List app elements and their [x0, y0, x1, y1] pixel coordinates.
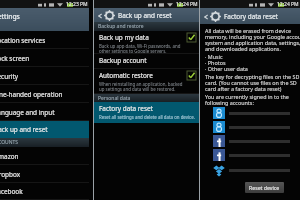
button[interactable] [213, 120, 300, 134]
staticText: All data will be erased from device memo… [205, 27, 300, 52]
staticText: Amazon [0, 152, 19, 161]
button[interactable] [213, 148, 300, 162]
button[interactable]: Amazon [0, 147, 89, 165]
button[interactable]: Language and input [0, 103, 89, 121]
button[interactable]: Dropbox [0, 165, 89, 183]
staticText: One-handed operation [0, 90, 63, 99]
staticText: Security [0, 72, 18, 81]
staticText: Reset device [249, 184, 280, 191]
staticText: Language and input [0, 108, 55, 117]
button[interactable]: Back up and reset [0, 121, 89, 138]
staticText: 12:24 PM [277, 1, 299, 8]
staticText: Backup and restore [98, 23, 144, 30]
other: Settings [104, 10, 115, 21]
button[interactable]: Location services [0, 31, 89, 49]
staticText: Back up and reset [118, 11, 172, 20]
button[interactable]: Backup account [94, 54, 199, 69]
button[interactable]: Factory data reset [94, 102, 199, 123]
staticText: Settings [0, 12, 20, 21]
button[interactable]: Reset device [245, 182, 284, 193]
staticText: 12:24 PM [176, 1, 198, 8]
staticText: When reinstalling an application, backed… [99, 81, 185, 92]
staticText: Back up and reset [0, 125, 48, 134]
staticText: You are currently signed in to the follo… [205, 93, 300, 106]
staticText: Personal data [98, 95, 131, 102]
staticText: Back up app data, Wi-Fi passwords, and o… [99, 43, 185, 54]
staticText: Location services [0, 36, 46, 45]
staticText: Reset all settings and delete all data o… [99, 114, 195, 120]
staticText: ACCOUNTS [0, 139, 19, 146]
staticText: Lock screen [0, 54, 30, 63]
button[interactable]: Back [203, 12, 209, 22]
other: Settings [210, 11, 221, 22]
staticText: Facebook [0, 187, 23, 196]
button[interactable]: Automatic restore [94, 69, 199, 94]
staticText: The key for decrypting files on the SD c… [205, 73, 300, 92]
button[interactable]: One-handed operation [0, 85, 89, 103]
staticText: Factory data reset [224, 12, 278, 21]
staticText: · Music · Photos · Other user data [205, 53, 300, 72]
button[interactable]: Back up my data [94, 31, 199, 54]
staticText: Factory data reset [99, 104, 153, 113]
staticText: 12:23 PM [66, 1, 88, 8]
button[interactable]: Lock screen [0, 49, 89, 67]
staticText: Backup account [99, 56, 147, 65]
button[interactable]: Back [97, 11, 103, 21]
button[interactable] [213, 134, 300, 148]
button[interactable]: Security [0, 67, 89, 85]
staticText: Automatic restore [99, 71, 153, 80]
staticText: Dropbox [0, 170, 21, 179]
staticText: Back up my data [99, 33, 149, 42]
button[interactable]: Facebook [0, 183, 89, 200]
button[interactable] [213, 162, 300, 178]
button[interactable] [213, 106, 300, 120]
